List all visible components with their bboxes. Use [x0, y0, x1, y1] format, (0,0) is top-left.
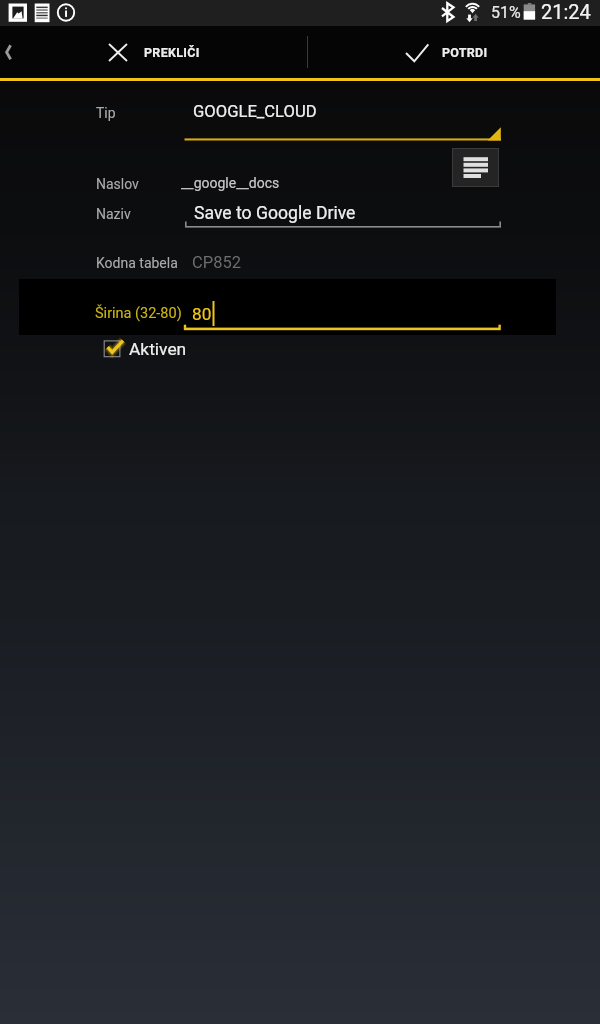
staticText: __google__docs	[181, 175, 280, 191]
button[interactable]	[19, 279, 556, 335]
button[interactable]: Browse	[452, 148, 499, 187]
staticText: Save to Google Drive	[194, 203, 356, 224]
button[interactable]: POTRDI	[300, 27, 592, 78]
staticText: Kodna tabela	[96, 255, 178, 271]
button[interactable]: Aktiven	[100, 336, 187, 362]
staticText: Širina (32-80)	[95, 305, 182, 322]
staticText: Naziv	[96, 206, 131, 222]
staticText: Aktiven	[129, 339, 187, 359]
staticText: 21:24	[541, 0, 591, 23]
staticText: GOOGLE_CLOUD	[193, 102, 317, 121]
staticText: 80	[192, 304, 212, 324]
staticText: Naslov	[96, 176, 139, 192]
staticText: PREKLIČI	[144, 45, 200, 60]
staticText: Tip	[96, 105, 116, 121]
button[interactable]: PREKLIČI	[0, 27, 307, 78]
staticText: 51%	[491, 3, 521, 22]
staticText: CP852	[192, 253, 241, 272]
staticText: POTRDI	[442, 45, 488, 60]
button[interactable]: Navigate up	[0, 27, 20, 78]
